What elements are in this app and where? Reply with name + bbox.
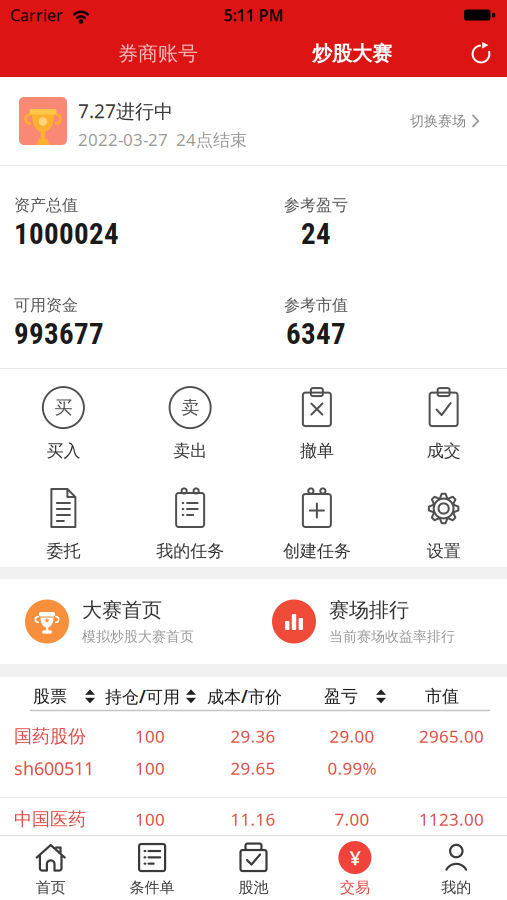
staticText: 卖出 — [173, 440, 207, 461]
staticText: 持仓/可用 — [105, 685, 180, 708]
staticText: 成交 — [427, 440, 461, 461]
staticText: 100 — [135, 725, 165, 748]
button[interactable]: ¥ — [304, 841, 406, 897]
button[interactable]: 撤单 — [253, 386, 380, 461]
staticText: 炒股大赛 — [312, 41, 392, 66]
staticText: 创建任务 — [283, 540, 351, 562]
staticText: 条件单 — [130, 878, 175, 897]
staticText: 7.27进行中 — [78, 98, 173, 124]
staticText: 撤单 — [300, 440, 334, 461]
staticText: 11.16 — [230, 808, 275, 831]
staticText: 我的 — [441, 878, 471, 897]
staticText: 卖 — [181, 396, 199, 419]
button[interactable]: 中国医药 — [0, 803, 507, 835]
staticText: 资产总值 — [14, 195, 78, 215]
button[interactable]: 切换赛场 — [410, 112, 507, 130]
staticText: 股票 — [33, 686, 67, 707]
staticText: 交易 — [340, 878, 370, 897]
button[interactable]: 创建任务 — [253, 486, 380, 562]
button[interactable]: 大赛首页 — [25, 598, 194, 645]
staticText: 委托 — [46, 540, 80, 562]
button[interactable]: 股池 — [203, 841, 304, 897]
staticText: 模拟炒股大赛首页 — [82, 628, 194, 645]
staticText: 1000024 — [14, 217, 119, 251]
staticText: 24 — [301, 217, 331, 251]
staticText: 参考盈亏 — [284, 195, 348, 215]
button[interactable]: 条件单 — [101, 841, 203, 897]
staticText: 100 — [135, 757, 165, 780]
staticText: 6347 — [286, 317, 346, 351]
button[interactable]: 买 — [0, 386, 127, 461]
staticText: 100 — [135, 808, 165, 831]
staticText: 可用资金 — [14, 295, 78, 315]
staticText: 993677 — [14, 317, 104, 351]
staticText: 当前赛场收益率排行 — [329, 628, 455, 645]
staticText: 股池 — [238, 878, 268, 897]
staticText: 切换赛场 — [410, 112, 466, 130]
button[interactable]: 国药股份 — [0, 720, 507, 784]
staticText: 1123.00 — [419, 808, 484, 831]
button[interactable]: 首页 — [0, 841, 101, 897]
staticText: 2022-03-27 24点结束 — [78, 128, 247, 151]
staticText: 中国医药 — [14, 808, 86, 831]
button[interactable]: 卖 — [127, 386, 254, 461]
staticText: 0.99% — [327, 757, 376, 780]
staticText: 大赛首页 — [82, 598, 162, 623]
staticText: 参考市值 — [284, 295, 348, 315]
staticText: 29.65 — [230, 757, 275, 780]
staticText: 成本/市价 — [207, 685, 282, 708]
button[interactable]: 成交 — [380, 386, 507, 461]
staticText: 设置 — [427, 540, 461, 562]
button[interactable]: 盈亏 — [324, 686, 387, 707]
staticText: 盈亏 — [324, 686, 358, 707]
staticText: 2965.00 — [419, 725, 484, 748]
staticText: 29.36 — [230, 725, 275, 748]
button[interactable]: 券商账号 — [118, 41, 198, 66]
staticText: 市值 — [425, 686, 459, 707]
staticText: 29.00 — [329, 725, 374, 748]
button[interactable]: 持仓/可用 — [105, 685, 197, 708]
staticText: ¥ — [349, 844, 360, 871]
staticText: Carrier — [10, 4, 63, 26]
staticText: 买入 — [46, 440, 80, 461]
button[interactable]: 我的任务 — [127, 486, 254, 562]
staticText: 5:11 PM — [223, 4, 283, 26]
button[interactable]: 股票 — [33, 686, 96, 707]
button[interactable]: 炒股大赛 — [312, 41, 392, 66]
staticText: 首页 — [36, 878, 66, 897]
button[interactable]: 我的 — [406, 841, 507, 897]
button[interactable]: 赛场排行 — [272, 598, 455, 645]
button[interactable]: 委托 — [0, 486, 127, 562]
staticText: 赛场排行 — [329, 598, 409, 623]
staticText: 我的任务 — [156, 540, 224, 562]
staticText: 买 — [54, 396, 72, 419]
staticText: 券商账号 — [118, 41, 198, 66]
staticText: sh600511 — [14, 756, 94, 780]
button[interactable]: 设置 — [380, 486, 507, 562]
staticText: 7.00 — [334, 808, 369, 831]
staticText: 国药股份 — [14, 725, 86, 748]
button[interactable]: 刷新 — [469, 41, 493, 65]
